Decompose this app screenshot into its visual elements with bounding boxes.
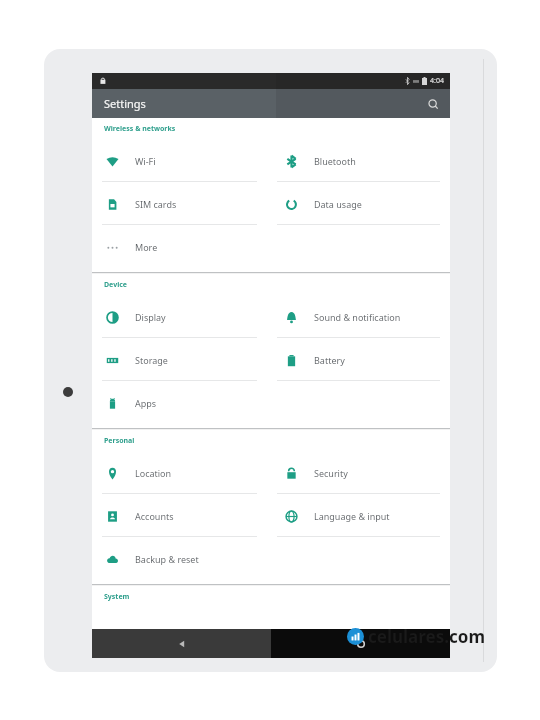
button[interactable]: Display — [92, 295, 271, 338]
staticText: Language & input — [314, 510, 390, 522]
button[interactable]: Data usage — [271, 182, 450, 225]
button[interactable]: Wi-Fi — [92, 139, 271, 182]
staticText: Accounts — [135, 510, 174, 522]
staticText: Storage — [135, 354, 168, 366]
staticText: Bluetooth — [314, 155, 356, 167]
staticText: Personal — [104, 436, 135, 446]
button[interactable]: More — [92, 225, 271, 268]
staticText: Backup & reset — [135, 553, 199, 565]
button[interactable]: Language & input — [271, 494, 450, 537]
button[interactable]: Battery — [271, 338, 450, 381]
staticText: SIM cards — [135, 198, 177, 210]
button[interactable]: Back — [92, 629, 271, 658]
staticText: Apps — [135, 397, 157, 409]
staticText: Security — [314, 467, 348, 479]
staticText: Sound & notification — [314, 311, 401, 323]
button[interactable]: Apps — [92, 381, 271, 424]
button[interactable]: Backup & reset — [92, 537, 271, 580]
button[interactable]: SIM cards — [92, 182, 271, 225]
staticText: More — [135, 241, 158, 253]
button[interactable]: Bluetooth — [271, 139, 450, 182]
staticText: System — [104, 592, 130, 602]
staticText: Device — [104, 280, 128, 290]
staticText: 4:04 — [430, 76, 444, 86]
staticText: Data usage — [314, 198, 362, 210]
staticText: Display — [135, 311, 166, 323]
button[interactable]: Accounts — [92, 494, 271, 537]
button[interactable]: Location — [92, 451, 271, 494]
staticText: Location — [135, 467, 172, 479]
staticText: celulares.com — [368, 625, 485, 648]
button[interactable]: Storage — [92, 338, 271, 381]
staticText: Settings — [104, 96, 146, 111]
button[interactable]: Home — [271, 629, 450, 658]
staticText: Wi-Fi — [135, 155, 156, 167]
button[interactable]: Security — [271, 451, 450, 494]
staticText: Wireless & networks — [104, 124, 176, 134]
button[interactable]: Search — [422, 93, 444, 115]
staticText: Battery — [314, 354, 345, 366]
button[interactable]: Sound & notification — [271, 295, 450, 338]
